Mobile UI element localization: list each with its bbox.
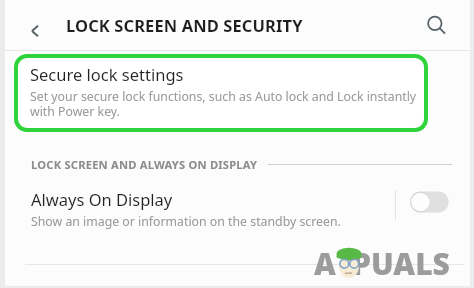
button[interactable]: Back xyxy=(17,12,55,50)
staticText: Show an image or information on the stan… xyxy=(31,213,341,230)
staticText: LOCK SCREEN AND SECURITY xyxy=(66,14,303,36)
button[interactable]: Secure lock settings xyxy=(14,54,428,132)
staticText: Set your secure lock functions, such as … xyxy=(30,88,418,120)
staticText: PUALS xyxy=(352,243,450,284)
staticText: Secure lock settings xyxy=(30,63,184,85)
button[interactable]: Search xyxy=(416,5,456,45)
staticText: LOCK SCREEN AND ALWAYS ON DISPLAY xyxy=(31,157,258,172)
staticText: Always On Display xyxy=(31,188,173,210)
staticText: A xyxy=(314,243,336,284)
button[interactable]: Always On Display xyxy=(5,178,470,264)
button[interactable]: Always On Display toggle xyxy=(410,187,454,217)
